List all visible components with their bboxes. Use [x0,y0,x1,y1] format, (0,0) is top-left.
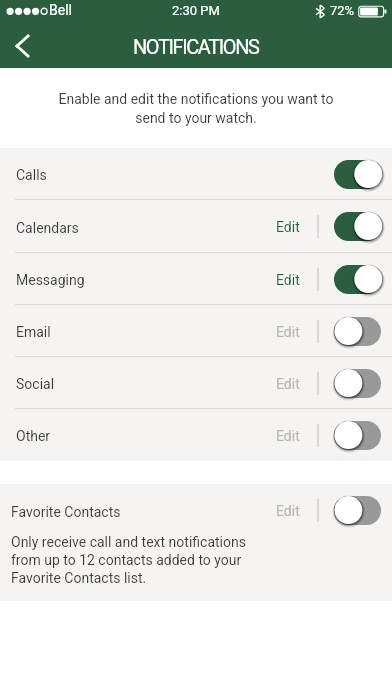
button[interactable]: Calendars [0,200,392,253]
staticText: Calls [16,167,47,183]
staticText: Enable and edit the notifications you wa… [50,91,342,126]
button[interactable]: Edit [272,219,304,235]
button[interactable]: Toggle off [334,496,382,525]
button[interactable]: Edit [272,324,304,340]
button[interactable]: Toggle off [334,369,382,398]
staticText: Email [16,324,51,340]
button[interactable]: Other [0,409,392,461]
button[interactable]: Back [0,24,44,68]
button[interactable]: Social [0,357,392,409]
button[interactable]: Toggle on [334,265,382,294]
staticText: Other [16,428,51,444]
button[interactable]: Messaging [0,253,392,305]
staticText: Favorite Contacts [11,504,121,520]
button[interactable]: Edit [272,376,304,392]
button[interactable]: Edit [272,272,304,288]
button[interactable]: Calls [0,148,392,200]
button[interactable]: Edit [272,503,304,519]
button[interactable]: Toggle on [334,160,382,189]
button[interactable]: Edit [272,428,304,444]
staticText: 72% [330,3,355,18]
staticText: Social [16,376,55,392]
staticText: 2:30 PM [172,3,220,18]
staticText: Messaging [16,272,85,288]
button[interactable]: Toggle off [334,317,382,346]
button[interactable]: Favorite Contacts [0,484,392,536]
button[interactable]: Email [0,305,392,357]
button[interactable]: Toggle off [334,421,382,450]
staticText: Bell [49,2,72,18]
staticText: NOTIFICATIONS [133,35,259,58]
button[interactable]: Toggle on [334,212,382,241]
staticText: Only receive call and text notifications… [11,534,252,587]
staticText: Calendars [16,220,79,236]
